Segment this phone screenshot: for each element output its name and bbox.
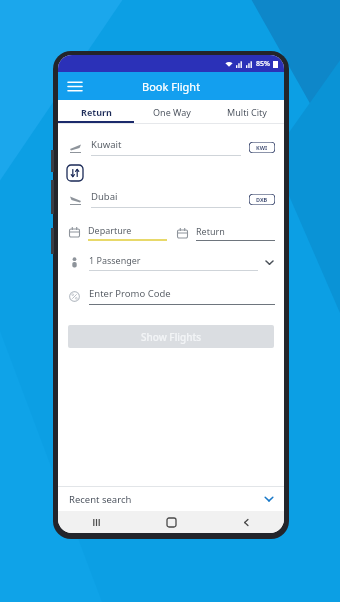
- button[interactable]: Dubai: [58, 184, 284, 214]
- button[interactable]: DXB: [249, 194, 275, 205]
- button[interactable]: Open navigation menu: [65, 76, 85, 96]
- staticText: Kuwait: [91, 138, 122, 151]
- staticText: DXB: [256, 196, 268, 203]
- button[interactable]: KWI: [249, 142, 275, 153]
- staticText: KWI: [256, 144, 268, 151]
- button[interactable]: 1 Passenger: [58, 247, 284, 277]
- staticText: Multi City: [227, 106, 267, 118]
- button[interactable]: One Way: [134, 100, 209, 123]
- button[interactable]: Show Flights: [68, 325, 274, 348]
- button[interactable]: Return: [58, 100, 134, 123]
- button[interactable]: Enter Promo Code: [58, 281, 284, 311]
- staticText: Dubai: [91, 190, 118, 203]
- staticText: Show Flights: [141, 330, 202, 344]
- staticText: 1 Passenger: [89, 254, 141, 266]
- staticText: Enter Promo Code: [89, 287, 171, 300]
- staticText: Departure: [88, 224, 132, 236]
- staticText: Book Flight: [142, 79, 201, 94]
- button[interactable]: Home: [134, 511, 209, 533]
- button[interactable]: Kuwait: [58, 132, 284, 162]
- button[interactable]: Back: [209, 511, 284, 533]
- staticText: Recent search: [69, 493, 263, 506]
- staticText: One Way: [153, 106, 191, 118]
- staticText: Return: [81, 106, 112, 118]
- button[interactable]: Swap origin and destination: [67, 165, 83, 181]
- button[interactable]: Recent search: [58, 487, 284, 511]
- button[interactable]: Multi City: [209, 100, 284, 123]
- button[interactable]: Return: [177, 225, 275, 241]
- button[interactable]: Recent apps: [58, 511, 134, 533]
- button[interactable]: Departure: [69, 224, 167, 241]
- staticText: Return: [196, 225, 225, 237]
- staticText: 85%: [256, 59, 270, 69]
